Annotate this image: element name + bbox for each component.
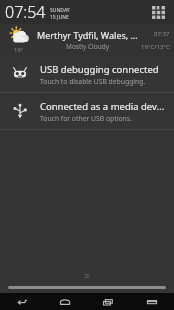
staticText: 19°C/13°C <box>141 43 170 51</box>
staticText: Touch for other USB options. <box>40 114 132 123</box>
staticText: 15 JUNE <box>50 14 69 21</box>
staticText: SUNDAY <box>50 7 70 14</box>
staticText: Connected as a media device <box>40 100 166 113</box>
button[interactable]: Connected as a media device <box>0 93 174 129</box>
button[interactable]: Close notification shade <box>0 272 174 293</box>
staticText: 07:37 <box>154 30 170 38</box>
staticText: USB debugging connected <box>40 63 159 76</box>
button[interactable]: 16° <box>0 24 174 56</box>
button[interactable]: Menu <box>130 293 174 310</box>
staticText: Mostly Cloudy <box>66 42 110 51</box>
button[interactable]: Home <box>43 293 86 310</box>
staticText: ≡ <box>84 272 90 280</box>
button[interactable]: Quick settings <box>148 2 168 22</box>
button[interactable]: Back <box>0 293 43 310</box>
button[interactable]: Recent apps <box>86 293 130 310</box>
staticText: 07:54 <box>5 1 46 23</box>
button[interactable]: USB debugging connected <box>0 56 174 92</box>
staticText: Merthyr Tydfil, Wales, United.. <box>37 29 138 41</box>
staticText: 16° <box>14 46 24 54</box>
staticText: Touch to disable USB debugging. <box>40 77 146 86</box>
